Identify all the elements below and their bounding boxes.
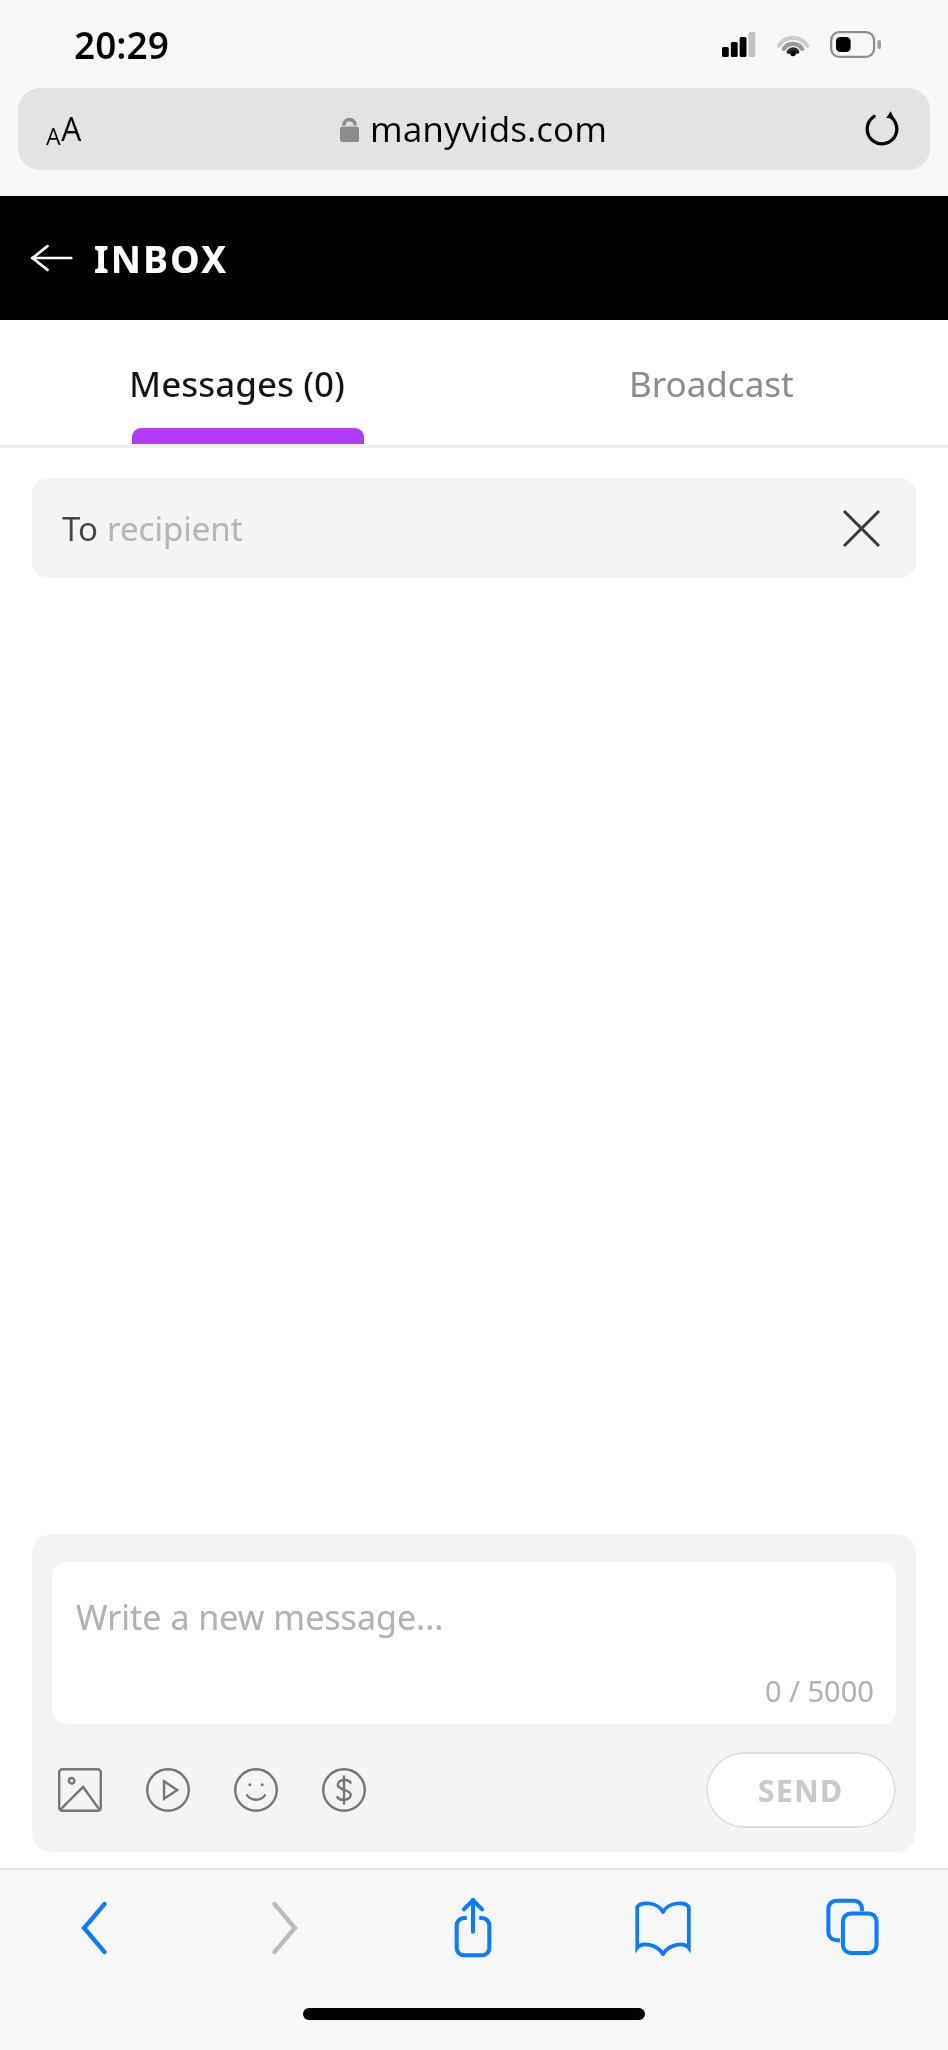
staticText: SEND (758, 1770, 844, 1811)
staticText: INBOX (94, 233, 229, 283)
staticText: A (61, 107, 82, 151)
button[interactable]: Attach video (142, 1764, 194, 1816)
button[interactable]: Share (378, 1870, 568, 1986)
button[interactable]: SEND (706, 1752, 896, 1828)
button[interactable]: Broadcast (474, 320, 948, 448)
button[interactable]: Text size options (18, 88, 930, 170)
button[interactable]: Clear recipient (834, 501, 888, 555)
button[interactable]: Forward (189, 1870, 378, 1986)
button[interactable]: Back (0, 1870, 189, 1986)
button[interactable]: Insert emoji (230, 1764, 282, 1816)
staticText: To (62, 506, 107, 551)
button[interactable]: Messages (0) (0, 320, 474, 448)
staticText: recipient (107, 506, 243, 551)
button[interactable]: Send tip (318, 1764, 370, 1816)
staticText: 0 / 5000 (765, 1671, 874, 1710)
staticText: manyvids.com (370, 105, 608, 153)
staticText: Broadcast (629, 360, 794, 408)
staticText: Write a new message... (76, 1594, 444, 1640)
button[interactable]: Tabs (758, 1870, 948, 1986)
button[interactable]: Bookmarks (568, 1870, 758, 1986)
button[interactable]: Write a new message... (52, 1562, 896, 1724)
staticText: Messages (0) (129, 360, 346, 408)
button[interactable]: To (32, 478, 916, 578)
button[interactable]: Attach image (54, 1764, 106, 1816)
button[interactable]: Back (20, 227, 82, 289)
button[interactable]: Reload page (858, 105, 906, 153)
button[interactable]: Text size options (46, 107, 82, 151)
staticText: 20:29 (74, 19, 169, 69)
staticText: A (46, 120, 61, 151)
